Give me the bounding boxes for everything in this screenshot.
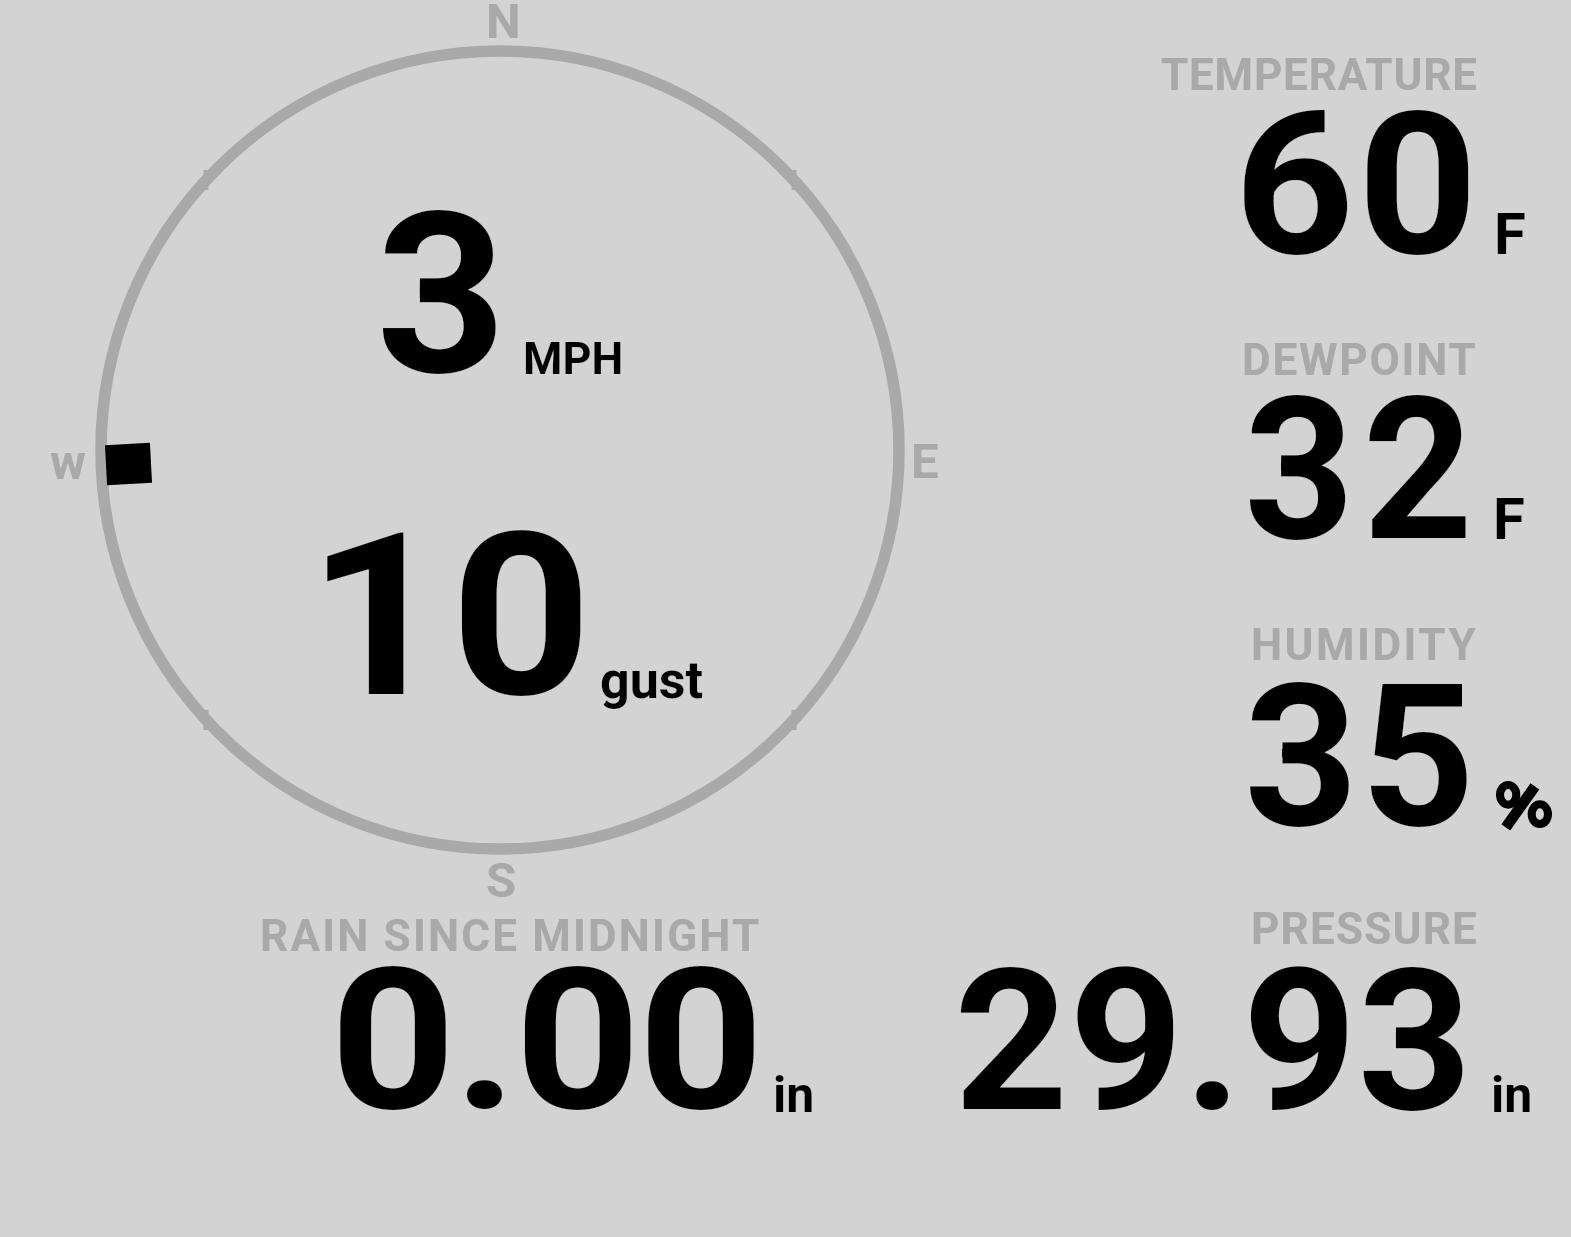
- staticText: E: [911, 433, 939, 490]
- button[interactable]: Temperature 60 degrees Fahrenheit: [1140, 40, 1560, 270]
- button[interactable]: Wind compass, 3 miles per hour, gusting …: [96, 46, 904, 854]
- button[interactable]: Pressure 29.93 inches: [930, 895, 1550, 1125]
- staticText: HUMIDITY: [1251, 619, 1479, 671]
- staticText: 0.00: [330, 925, 762, 1156]
- staticText: in: [1491, 1066, 1533, 1125]
- staticText: 60: [1234, 68, 1482, 301]
- staticText: S: [486, 852, 517, 909]
- staticText: 32: [1244, 353, 1482, 586]
- staticText: 29.93: [954, 926, 1473, 1157]
- button[interactable]: Rain since midnight 0.00 inches: [240, 895, 840, 1125]
- staticText: F: [1493, 485, 1525, 553]
- staticText: in: [773, 1066, 815, 1125]
- staticText: RAIN SINCE MIDNIGHT: [260, 910, 762, 962]
- staticText: MPH: [523, 332, 624, 385]
- staticText: 10: [307, 484, 595, 749]
- staticText: w: [50, 434, 86, 491]
- staticText: gust: [600, 650, 704, 711]
- staticText: F: [1494, 200, 1526, 268]
- staticText: 35: [1244, 640, 1478, 873]
- staticText: DEWPOINT: [1242, 334, 1478, 386]
- staticText: TEMPERATURE: [1161, 49, 1478, 101]
- button[interactable]: Dewpoint 32 degrees Fahrenheit: [1140, 325, 1560, 555]
- button[interactable]: Humidity 35 percent: [1140, 610, 1560, 840]
- staticText: N: [486, 0, 521, 50]
- staticText: 3: [376, 164, 507, 427]
- staticText: PRESSURE: [1251, 903, 1479, 955]
